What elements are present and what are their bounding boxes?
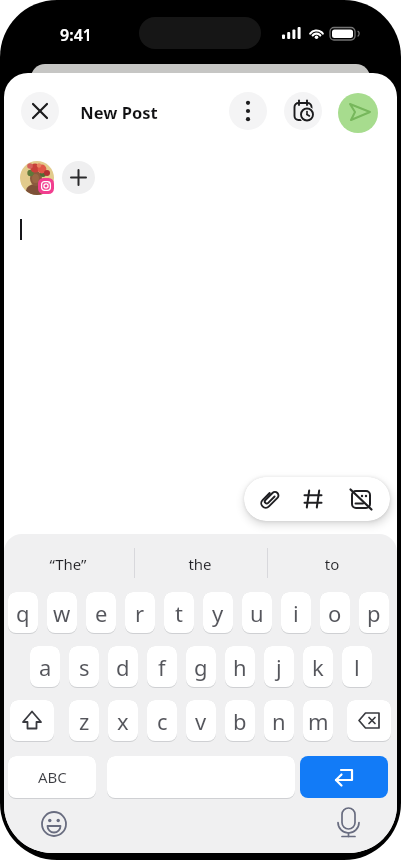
button[interactable]: h xyxy=(225,646,255,687)
button[interactable]: n xyxy=(264,700,294,741)
staticText: g xyxy=(194,652,208,682)
staticText: ABC xyxy=(38,767,67,787)
button[interactable] xyxy=(338,93,378,133)
button[interactable] xyxy=(284,92,322,130)
staticText: d xyxy=(116,652,130,682)
button[interactable] xyxy=(20,161,54,195)
button[interactable]: j xyxy=(264,646,294,687)
button[interactable]: to xyxy=(292,554,372,574)
button[interactable]: f xyxy=(147,646,177,687)
button[interactable]: the xyxy=(160,554,240,574)
button[interactable] xyxy=(347,700,391,741)
button[interactable]: t xyxy=(164,592,194,633)
staticText: x xyxy=(117,706,129,736)
button[interactable]: z xyxy=(69,700,99,741)
button[interactable] xyxy=(21,92,59,130)
button[interactable] xyxy=(10,700,54,741)
button[interactable]: p xyxy=(359,592,389,633)
staticText: r xyxy=(135,598,145,628)
staticText: y xyxy=(212,598,224,628)
staticText: t xyxy=(175,598,183,628)
button[interactable]: e xyxy=(86,592,116,633)
button[interactable]: i xyxy=(281,592,311,633)
staticText: e xyxy=(95,598,108,628)
button[interactable]: k xyxy=(303,646,333,687)
button[interactable]: “The” xyxy=(28,554,108,574)
button[interactable]: m xyxy=(303,700,333,741)
button[interactable]: d xyxy=(108,646,138,687)
staticText: o xyxy=(328,598,342,628)
staticText: 9:41 xyxy=(50,24,102,46)
button[interactable] xyxy=(331,806,367,842)
button[interactable]: w xyxy=(47,592,77,633)
button[interactable] xyxy=(229,92,267,130)
button[interactable]: o xyxy=(320,592,350,633)
button[interactable]: q xyxy=(8,592,38,633)
button[interactable] xyxy=(8,756,96,798)
button[interactable] xyxy=(36,810,72,846)
button[interactable]: c xyxy=(147,700,177,741)
staticText: q xyxy=(16,598,30,628)
staticText: j xyxy=(276,652,282,682)
staticText: s xyxy=(79,652,90,682)
button[interactable]: y xyxy=(203,592,233,633)
staticText: v xyxy=(195,706,207,736)
button[interactable] xyxy=(250,479,290,519)
button[interactable]: x xyxy=(108,700,138,741)
staticText: New Post xyxy=(66,101,172,123)
button[interactable] xyxy=(293,479,333,519)
staticText: m xyxy=(308,706,329,736)
button[interactable]: v xyxy=(186,700,216,741)
button[interactable]: s xyxy=(69,646,99,687)
button[interactable]: u xyxy=(242,592,272,633)
button[interactable]: b xyxy=(225,700,255,741)
staticText: k xyxy=(312,652,324,682)
staticText: p xyxy=(367,598,381,628)
button[interactable] xyxy=(341,479,381,519)
staticText: b xyxy=(233,706,247,736)
staticText: l xyxy=(354,652,360,682)
staticText: w xyxy=(53,598,71,628)
button[interactable]: r xyxy=(125,592,155,633)
staticText: i xyxy=(293,598,299,628)
staticText: h xyxy=(233,652,247,682)
button[interactable] xyxy=(62,161,95,194)
staticText: n xyxy=(272,706,286,736)
button[interactable]: g xyxy=(186,646,216,687)
staticText: z xyxy=(79,706,90,736)
staticText: a xyxy=(39,652,52,682)
staticText: c xyxy=(157,706,168,736)
button[interactable]: a xyxy=(30,646,60,687)
button[interactable]: l xyxy=(342,646,372,687)
button[interactable] xyxy=(300,756,388,798)
staticText: f xyxy=(158,652,166,682)
staticText: u xyxy=(250,598,264,628)
